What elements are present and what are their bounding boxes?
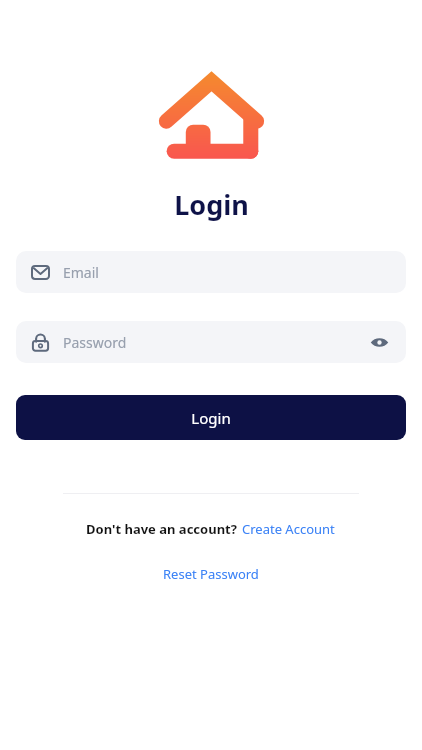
button[interactable]: Password xyxy=(16,321,406,363)
staticText: Login xyxy=(191,408,231,428)
button[interactable]: Reset Password xyxy=(157,562,265,586)
staticText: Login xyxy=(174,186,249,223)
staticText: Reset Password xyxy=(163,565,259,583)
staticText: Email xyxy=(63,263,392,282)
staticText: Create Account xyxy=(242,520,335,538)
staticText: Password xyxy=(63,333,366,352)
button[interactable]: Show password xyxy=(366,329,392,355)
staticText: Don't have an account? xyxy=(86,520,241,538)
button[interactable]: Login xyxy=(16,395,406,440)
button[interactable]: Create Account xyxy=(241,518,336,540)
button[interactable]: Email xyxy=(16,251,406,293)
